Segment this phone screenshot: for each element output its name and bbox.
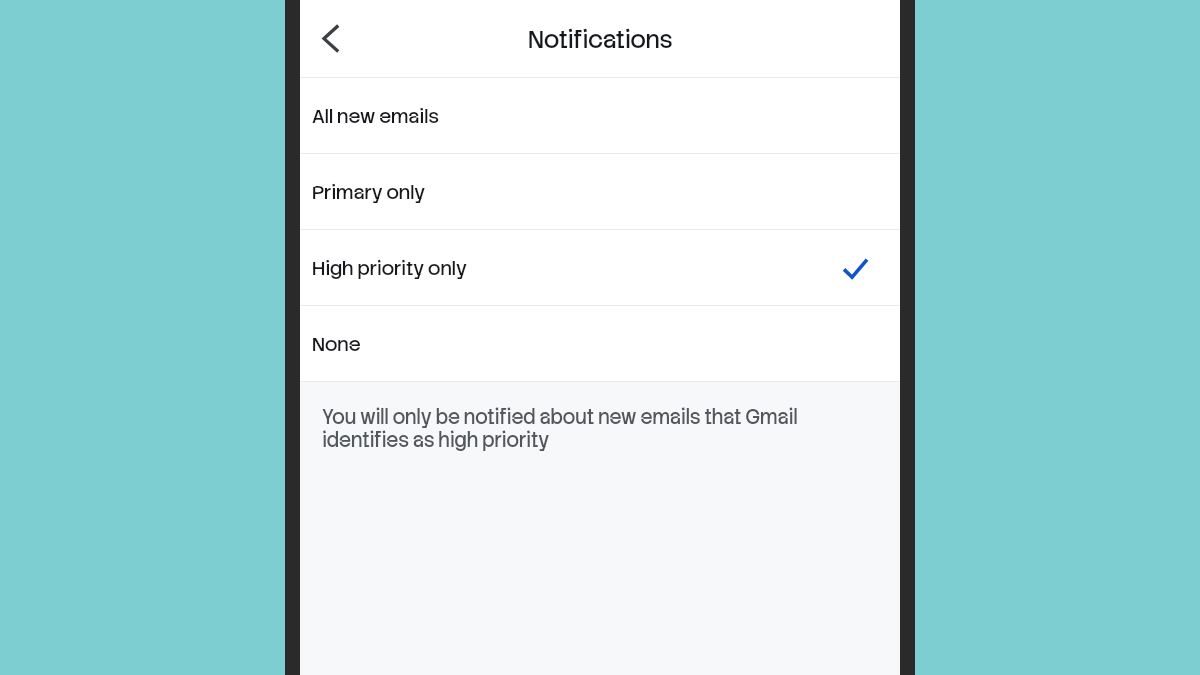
button[interactable]: High priority only <box>300 230 900 306</box>
staticText: None <box>312 331 361 357</box>
staticText: High priority only <box>312 255 467 281</box>
staticText: Primary only <box>312 179 426 205</box>
button[interactable]: Navigate back <box>306 15 354 63</box>
staticText: You will only be notified about new emai… <box>322 404 812 453</box>
staticText: Notifications <box>528 24 673 55</box>
button[interactable]: Primary only <box>300 154 900 230</box>
button[interactable]: All new emails <box>300 78 900 154</box>
staticText: All new emails <box>312 103 439 129</box>
button[interactable]: None <box>300 306 900 382</box>
